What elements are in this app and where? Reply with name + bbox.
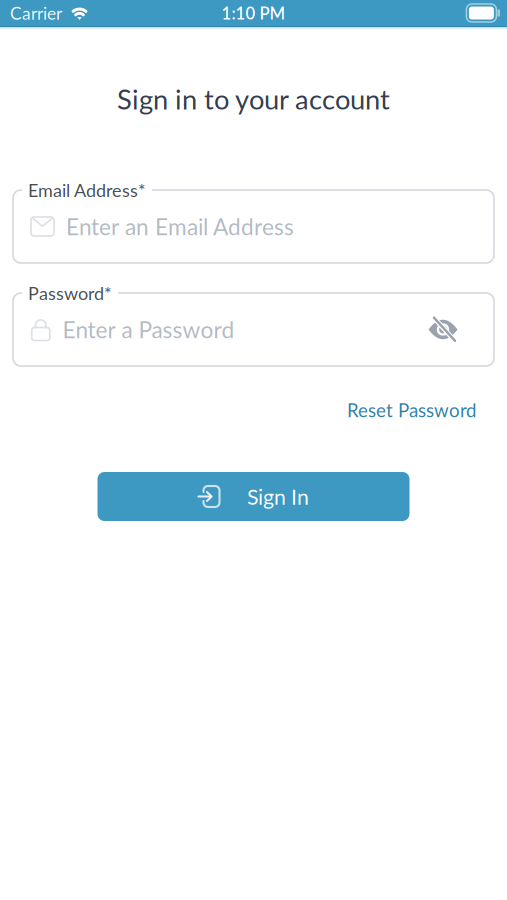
button[interactable]: Sign In <box>97 472 409 521</box>
button[interactable]: Reset Password <box>347 399 476 421</box>
staticText: Password* <box>28 282 112 304</box>
staticText: Enter a Password <box>62 316 234 343</box>
staticText: Enter an Email Address <box>66 213 294 240</box>
staticText: 1:10 PM <box>221 3 285 23</box>
staticText: Sign in to your account <box>117 83 390 115</box>
button[interactable]: Show password <box>428 314 458 344</box>
staticText: Carrier <box>10 3 62 23</box>
staticText: Reset Password <box>347 399 476 421</box>
staticText: Email Address* <box>28 179 146 201</box>
staticText: Sign In <box>247 484 309 509</box>
